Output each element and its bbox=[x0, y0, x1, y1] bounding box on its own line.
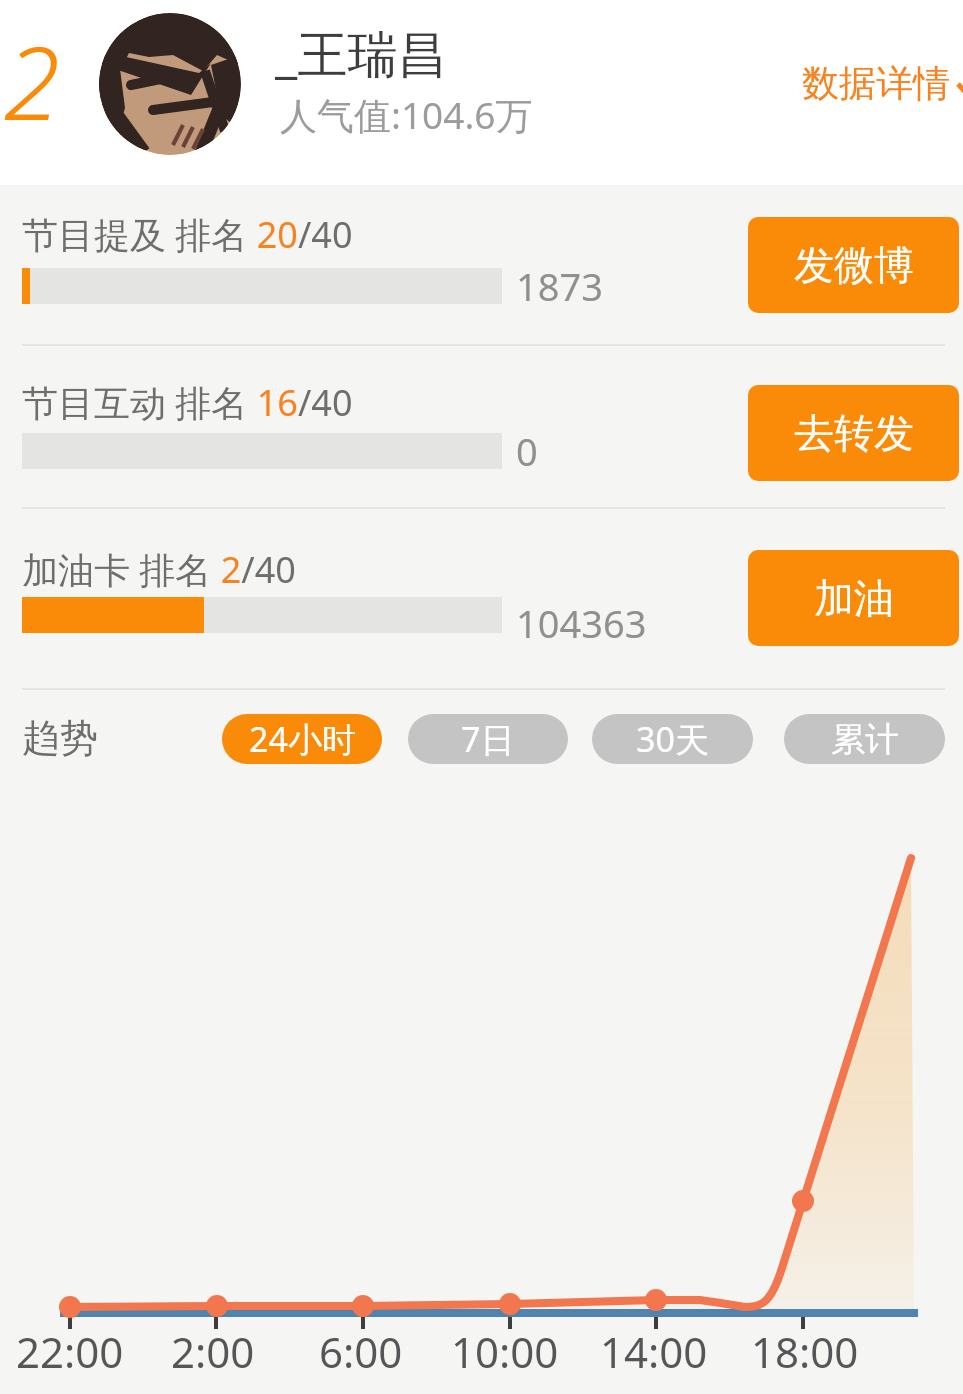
button[interactable]: 加油 bbox=[748, 550, 959, 646]
staticText: 7日 bbox=[461, 716, 515, 762]
staticText: 去转发 bbox=[794, 408, 914, 458]
staticText: 10:00 bbox=[451, 1323, 559, 1380]
button[interactable]: 去转发 bbox=[748, 385, 959, 481]
staticText: 1873 bbox=[516, 260, 603, 312]
staticText: 累计 bbox=[831, 718, 899, 761]
button[interactable]: 发微博 bbox=[748, 217, 959, 313]
button[interactable]: 累计 bbox=[784, 714, 945, 764]
staticText: 趋势 bbox=[22, 714, 98, 762]
button[interactable]: 30天 bbox=[592, 714, 753, 764]
staticText: 2 bbox=[4, 11, 61, 150]
button[interactable]: 数据详情 bbox=[802, 60, 950, 107]
staticText: 数据详情 bbox=[802, 60, 950, 107]
staticText: 30天 bbox=[636, 716, 709, 762]
staticText: 104363 bbox=[516, 597, 647, 649]
button[interactable]: 24小时 bbox=[222, 714, 382, 764]
staticText: 加油卡 排名 2/40 bbox=[22, 545, 296, 594]
button[interactable] bbox=[99, 13, 241, 155]
staticText: 节目互动 排名 16/40 bbox=[22, 378, 353, 427]
staticText: 加油 bbox=[814, 573, 894, 623]
staticText: _王瑞昌 bbox=[275, 19, 448, 87]
staticText: 发微博 bbox=[794, 240, 914, 290]
staticText: 6:00 bbox=[319, 1323, 403, 1380]
staticText: 18:00 bbox=[751, 1323, 859, 1380]
staticText: 节目提及 排名 20/40 bbox=[22, 210, 353, 259]
button[interactable]: 7日 bbox=[408, 714, 568, 764]
staticText: 0 bbox=[516, 425, 538, 477]
staticText: 14:00 bbox=[600, 1323, 708, 1380]
staticText: 人气值:104.6万 bbox=[280, 89, 533, 140]
staticText: 22:00 bbox=[16, 1323, 124, 1380]
staticText: 24小时 bbox=[249, 716, 356, 762]
staticText: 2:00 bbox=[171, 1323, 255, 1380]
